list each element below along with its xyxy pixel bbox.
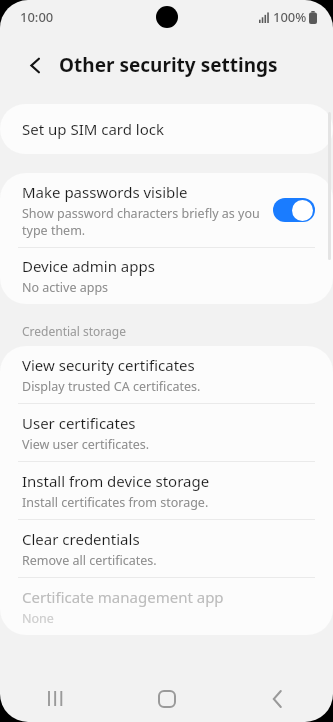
staticText: Make passwords visible [22, 182, 188, 202]
staticText: Set up SIM card lock [22, 119, 165, 139]
button[interactable]: Certificate management app [0, 578, 333, 635]
staticText: View user certificates. [22, 436, 150, 453]
staticText: Certificate management app [22, 587, 224, 607]
button[interactable]: Back [18, 48, 52, 82]
button[interactable]: Install from device storage [0, 462, 333, 519]
staticText: Display trusted CA certificates. [22, 378, 201, 395]
button[interactable]: View security certificates [0, 346, 333, 403]
button[interactable]: Clear credentials [0, 520, 333, 577]
button[interactable]: Make passwords visible [0, 173, 333, 247]
staticText: Show password characters briefly as you … [22, 205, 263, 238]
staticText: Clear credentials [22, 529, 140, 549]
staticText: Credential storage [22, 323, 126, 339]
button[interactable]: Home [111, 675, 222, 722]
staticText: Device admin apps [22, 256, 155, 276]
staticText: Install certificates from storage. [22, 494, 209, 511]
button[interactable]: Set up SIM card lock [0, 104, 333, 154]
staticText: 100% [273, 8, 307, 26]
staticText: Remove all certificates. [22, 552, 157, 569]
button[interactable]: Device admin apps [0, 248, 333, 304]
staticText: None [22, 610, 54, 627]
staticText: 10:00 [20, 8, 54, 26]
staticText: No active apps [22, 279, 109, 296]
staticText: User certificates [22, 413, 136, 433]
button[interactable]: User certificates [0, 404, 333, 461]
staticText: Install from device storage [22, 471, 210, 491]
staticText: Other security settings [59, 52, 278, 78]
button[interactable]: Make passwords visible toggle [273, 198, 315, 222]
button[interactable]: Back [222, 675, 333, 722]
button[interactable]: Recents [0, 675, 111, 722]
staticText: View security certificates [22, 355, 195, 375]
